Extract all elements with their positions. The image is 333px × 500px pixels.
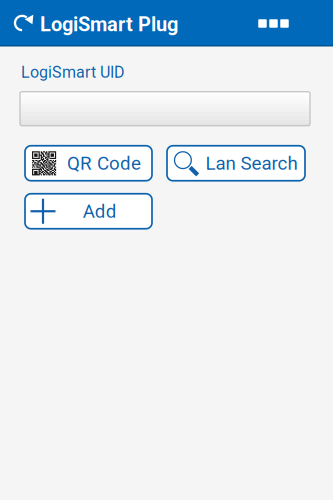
staticText: LogiSmart Plug xyxy=(40,13,178,36)
staticText: Add xyxy=(83,200,117,222)
staticText: QR Code xyxy=(67,152,141,174)
button[interactable]: Lan Search xyxy=(167,146,305,181)
staticText: LogiSmart UID xyxy=(21,63,125,82)
button[interactable]: Add xyxy=(25,194,152,229)
button[interactable]: More options xyxy=(243,0,303,46)
button[interactable]: QR Code xyxy=(25,146,152,181)
button[interactable]: Refresh xyxy=(3,0,43,46)
button[interactable]: LogiSmart Plug xyxy=(40,1,178,47)
staticText: Lan Search xyxy=(205,152,297,174)
